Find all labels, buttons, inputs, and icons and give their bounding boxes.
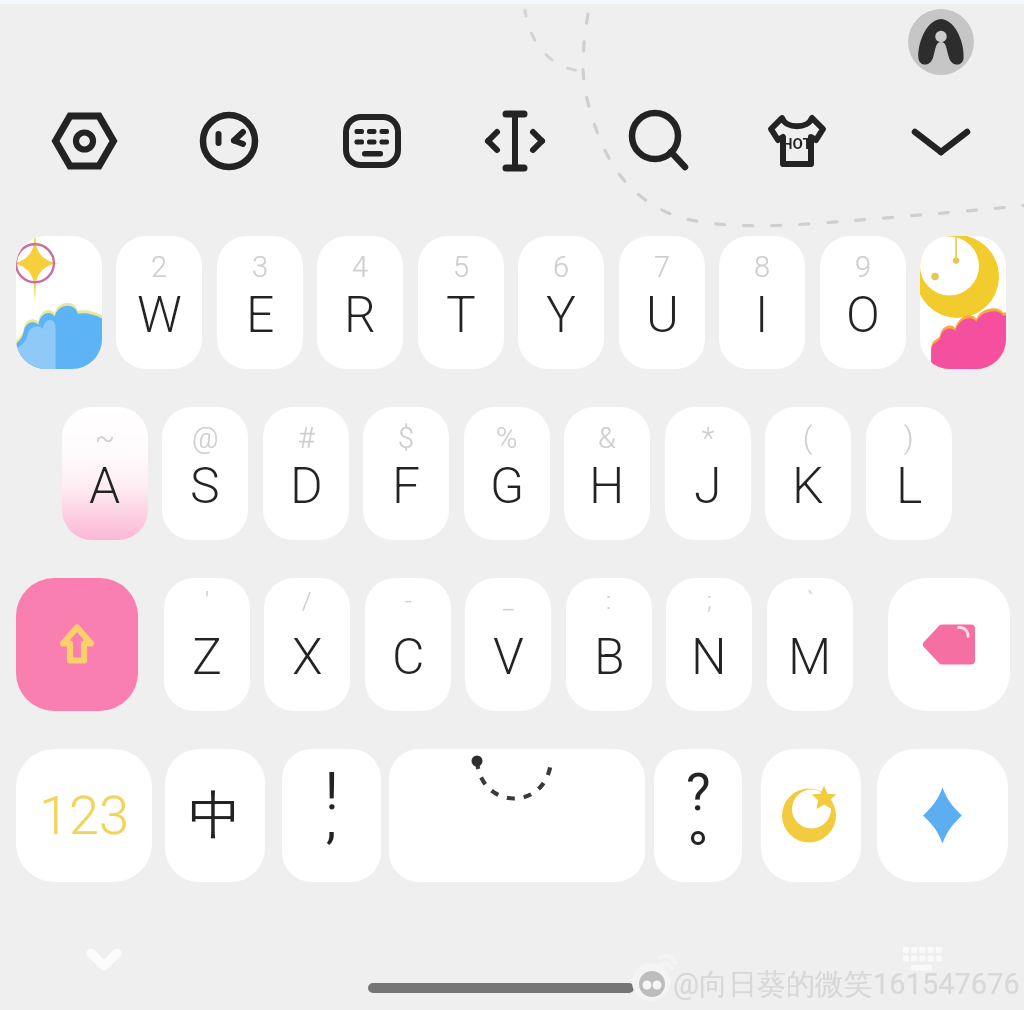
staticText: ) bbox=[904, 421, 914, 455]
staticText: W bbox=[137, 286, 182, 345]
button[interactable]: Hot styles bbox=[752, 96, 842, 186]
button[interactable]: Account bbox=[908, 9, 974, 75]
staticText: 2 bbox=[151, 250, 168, 284]
button[interactable]: Question mark bbox=[654, 749, 742, 882]
button[interactable]: Enter bbox=[877, 749, 1008, 882]
staticText: 123 bbox=[39, 784, 129, 847]
staticText: F bbox=[392, 457, 421, 516]
staticText: N bbox=[691, 628, 727, 687]
button[interactable]: Q bbox=[16, 236, 102, 369]
button[interactable]: N bbox=[666, 578, 752, 711]
staticText: E bbox=[246, 286, 275, 345]
staticText: 7 bbox=[654, 250, 671, 284]
staticText: V bbox=[493, 628, 524, 687]
button[interactable]: P bbox=[920, 236, 1006, 369]
staticText: & bbox=[598, 421, 616, 455]
staticText: M bbox=[788, 628, 832, 687]
staticText: G bbox=[490, 457, 525, 516]
staticText: ~ bbox=[95, 421, 115, 455]
staticText: , bbox=[326, 790, 337, 851]
staticText: # bbox=[298, 421, 315, 455]
staticText: L bbox=[896, 457, 923, 516]
button[interactable]: Keyboard layout bbox=[327, 96, 417, 186]
staticText: 中 bbox=[189, 783, 241, 849]
button[interactable]: F bbox=[363, 407, 449, 540]
button[interactable]: O bbox=[820, 236, 906, 369]
staticText: ? bbox=[686, 762, 711, 823]
staticText: HOT bbox=[782, 135, 812, 153]
button[interactable]: H bbox=[564, 407, 650, 540]
staticText: : bbox=[606, 587, 612, 615]
button[interactable]: Numbers bbox=[16, 749, 152, 882]
button[interactable]: K bbox=[765, 407, 851, 540]
staticText: $ bbox=[398, 421, 415, 455]
button[interactable]: Z bbox=[164, 578, 250, 711]
staticText: A bbox=[89, 457, 121, 516]
button[interactable]: S bbox=[162, 407, 248, 540]
staticText: ` bbox=[807, 587, 814, 615]
staticText: J bbox=[694, 457, 722, 516]
staticText: 6 bbox=[553, 250, 570, 284]
staticText: / bbox=[302, 587, 312, 615]
staticText: % bbox=[496, 421, 518, 455]
button[interactable]: I bbox=[719, 236, 805, 369]
staticText: Z bbox=[192, 628, 222, 687]
staticText: I bbox=[755, 286, 769, 345]
button[interactable]: T bbox=[418, 236, 504, 369]
staticText: S bbox=[190, 457, 220, 516]
staticText: ! bbox=[325, 761, 339, 822]
button[interactable]: R bbox=[317, 236, 403, 369]
staticText: * bbox=[702, 421, 715, 455]
button[interactable]: J bbox=[665, 407, 751, 540]
staticText: @向日葵的微笑161547676 bbox=[673, 966, 1020, 1003]
staticText: - bbox=[405, 587, 412, 615]
staticText: X bbox=[292, 628, 323, 687]
staticText: O bbox=[846, 286, 880, 345]
button[interactable]: Emoji bbox=[184, 96, 274, 186]
button[interactable]: Cursor control bbox=[470, 96, 560, 186]
staticText: 8 bbox=[754, 250, 771, 284]
staticText: C bbox=[392, 628, 425, 687]
button[interactable]: G bbox=[464, 407, 550, 540]
button[interactable]: Backspace bbox=[888, 578, 1010, 711]
staticText: ( bbox=[803, 421, 813, 455]
staticText: U bbox=[646, 286, 679, 345]
staticText: ; bbox=[707, 587, 712, 615]
staticText: B bbox=[594, 628, 625, 687]
button[interactable]: Exclamation comma bbox=[282, 749, 381, 882]
staticText: ' bbox=[205, 587, 210, 615]
staticText: Y bbox=[546, 286, 576, 345]
staticText: T bbox=[446, 286, 476, 345]
staticText: H bbox=[589, 457, 625, 516]
button[interactable]: V bbox=[465, 578, 551, 711]
button[interactable]: D bbox=[263, 407, 349, 540]
button[interactable]: Shift bbox=[16, 578, 138, 711]
button[interactable]: Collapse keyboard bbox=[69, 924, 139, 994]
button[interactable]: Hide keyboard bbox=[896, 96, 986, 186]
button[interactable]: B bbox=[566, 578, 652, 711]
staticText: 4 bbox=[352, 250, 369, 284]
button[interactable]: C bbox=[365, 578, 451, 711]
staticText: D bbox=[290, 457, 323, 516]
staticText: _ bbox=[503, 587, 514, 615]
button[interactable]: Space bbox=[389, 749, 645, 882]
button[interactable]: M bbox=[767, 578, 853, 711]
staticText: R bbox=[344, 286, 376, 345]
staticText: @ bbox=[192, 421, 219, 455]
button[interactable]: Emoji bbox=[761, 749, 861, 882]
staticText: 3 bbox=[252, 250, 269, 284]
button[interactable]: X bbox=[264, 578, 350, 711]
button[interactable]: Y bbox=[518, 236, 604, 369]
button[interactable]: Theme bbox=[40, 96, 130, 186]
button[interactable]: W bbox=[116, 236, 202, 369]
staticText: 9 bbox=[855, 250, 872, 284]
button[interactable]: E bbox=[217, 236, 303, 369]
staticText: 5 bbox=[453, 250, 470, 284]
button[interactable]: L bbox=[866, 407, 952, 540]
button[interactable]: Search bbox=[613, 96, 703, 186]
staticText: K bbox=[792, 457, 824, 516]
button[interactable]: Chinese input bbox=[165, 749, 265, 882]
button[interactable]: U bbox=[619, 236, 705, 369]
button[interactable]: A bbox=[62, 407, 148, 540]
